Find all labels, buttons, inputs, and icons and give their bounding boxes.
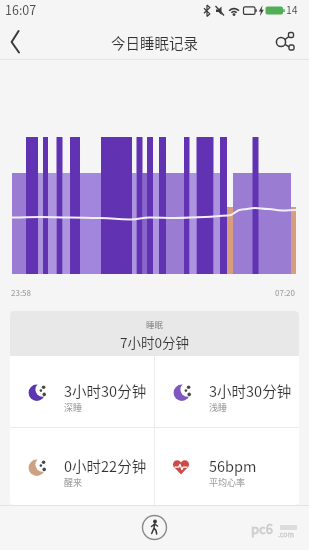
staticText: 浅睡 [209, 401, 228, 414]
staticText: 14 [286, 2, 298, 17]
button[interactable]: 56bpm [155, 428, 299, 505]
staticText: 醒来 [64, 476, 83, 489]
button[interactable]: 3小时30分钟 [10, 356, 154, 427]
staticText: 56bpm [209, 455, 257, 476]
staticText: 今日睡眠记录 [111, 32, 198, 53]
staticText: 深睡 [64, 401, 83, 414]
staticText: 23:58 [11, 287, 31, 299]
staticText: 睡眠 [146, 318, 164, 330]
staticText: 16:07 [5, 0, 37, 18]
button[interactable]: 0小时22分钟 [10, 428, 154, 505]
button[interactable] [0, 22, 38, 60]
staticText: 0小时22分钟 [64, 455, 147, 476]
staticText: 07:20 [275, 287, 295, 299]
staticText: pc6 [251, 519, 273, 538]
staticText: 3小时30分钟 [64, 380, 147, 401]
staticText: .com [278, 529, 294, 539]
staticText: 平均心率 [209, 476, 246, 489]
button[interactable] [265, 22, 309, 60]
button[interactable]: 3小时30分钟 [155, 356, 299, 427]
button[interactable] [141, 514, 168, 541]
staticText: 7小时0分钟 [120, 332, 189, 352]
staticText: 3小时30分钟 [209, 380, 292, 401]
